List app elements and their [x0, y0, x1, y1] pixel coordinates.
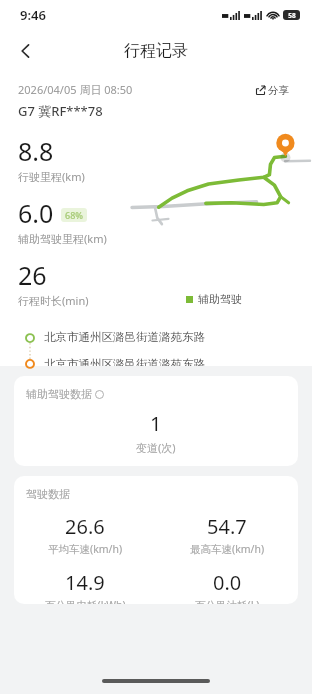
staticText: 14.9 — [65, 569, 105, 596]
staticText: 平均车速(km/h) — [48, 542, 123, 556]
button[interactable]: 辅助驾驶数据 — [26, 387, 104, 401]
staticText: 68% — [65, 209, 83, 221]
staticText: 9:46 — [20, 6, 46, 24]
staticText: 0.0 — [213, 569, 242, 596]
staticText: 驾驶数据 — [26, 487, 70, 501]
staticText: 行程时长(min) — [18, 293, 89, 308]
staticText: 最高车速(km/h) — [190, 542, 265, 556]
staticText: 辅助驾驶数据 — [26, 387, 92, 401]
staticText: 1 — [150, 410, 162, 437]
staticText: 百公里油耗(L) — [195, 598, 260, 604]
staticText: 2026/04/05 周日 08:50 — [18, 82, 133, 97]
staticText: 变道(次) — [136, 440, 176, 455]
staticText: 北京市通州区潞邑街道潞苑东路 — [44, 330, 205, 344]
staticText: 辅助驾驶 — [198, 292, 242, 306]
staticText: 北京市通州区潞邑街道潞苑东路 — [44, 357, 205, 366]
staticText: 行程记录 — [124, 41, 188, 61]
staticText: 行驶里程(km) — [18, 169, 85, 184]
staticText: 辅助驾驶里程(km) — [18, 231, 107, 246]
button[interactable]: Back — [8, 33, 44, 69]
staticText: 8.8 — [18, 134, 54, 168]
staticText: 26.6 — [65, 513, 105, 540]
staticText: G7 冀RF***78 — [18, 102, 103, 120]
staticText: 分享 — [268, 84, 289, 97]
staticText: 58 — [288, 11, 296, 20]
button[interactable]: 分享 — [247, 80, 298, 101]
staticText: 6.0 — [18, 196, 54, 230]
staticText: 26 — [18, 258, 47, 292]
staticText: 百公里电耗(kWh) — [45, 598, 126, 604]
staticText: 54.7 — [207, 513, 247, 540]
